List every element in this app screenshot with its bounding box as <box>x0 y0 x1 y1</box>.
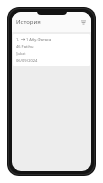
staticText: История <box>16 18 41 26</box>
button[interactable]: Фильтр <box>79 18 88 27</box>
button[interactable]: 1. <box>13 34 90 66</box>
staticText: 1 Абу-Фатаса <box>26 37 52 42</box>
staticText: 06/09/2024 <box>16 58 38 63</box>
staticText: 46 Fatihu <box>16 44 34 49</box>
staticText: Şubat <box>16 51 26 56</box>
staticText: 1. <box>16 37 20 42</box>
